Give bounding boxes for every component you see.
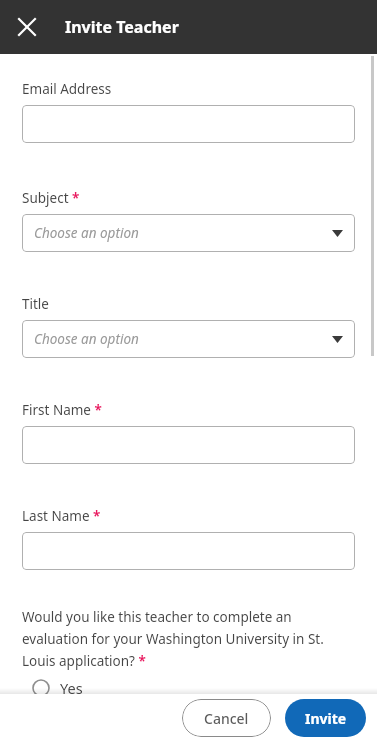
button[interactable]: Invite: [285, 699, 366, 737]
staticText: Invite Teacher: [65, 16, 179, 38]
button[interactable]: Choose an option: [22, 320, 355, 358]
staticText: Cancel: [204, 709, 249, 728]
button[interactable]: Cancel: [182, 699, 271, 737]
button[interactable]: [22, 532, 355, 570]
staticText: Subject *: [22, 189, 80, 207]
button[interactable]: Close: [11, 11, 43, 43]
staticText: First Name *: [22, 401, 102, 419]
button[interactable]: [22, 426, 355, 464]
staticText: Title: [22, 295, 49, 313]
staticText: Email Address: [22, 80, 112, 98]
staticText: Yes: [60, 678, 83, 698]
staticText: Last Name *: [22, 507, 101, 525]
staticText: Choose an option: [34, 330, 139, 348]
button[interactable]: Yes: [22, 678, 355, 698]
button[interactable]: [22, 105, 355, 143]
button[interactable]: Choose an option: [22, 214, 355, 252]
staticText: Choose an option: [34, 224, 139, 242]
staticText: Invite: [305, 709, 347, 728]
staticText: Would you like this teacher to complete …: [22, 608, 355, 670]
